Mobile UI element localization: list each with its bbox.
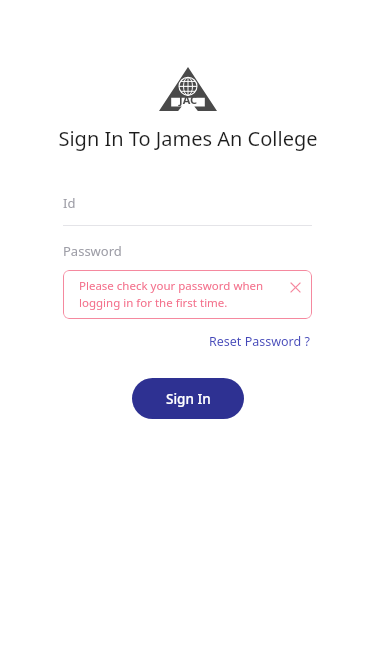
staticText: Password <box>63 242 122 260</box>
staticText: Sign In To James An College <box>58 125 318 152</box>
button[interactable]: Dismiss error <box>286 278 304 296</box>
other: James An College logo <box>159 67 217 111</box>
button[interactable]: Sign In <box>132 378 244 419</box>
staticText: JAC <box>179 92 198 107</box>
button[interactable]: Reset Password ? <box>207 331 312 352</box>
staticText: Sign In <box>166 390 211 408</box>
staticText: Reset Password ? <box>209 333 310 350</box>
button[interactable]: Id <box>63 194 312 225</box>
staticText: Id <box>63 194 76 212</box>
button[interactable]: Password <box>63 242 312 262</box>
staticText: Please check your password when logging … <box>79 278 280 310</box>
